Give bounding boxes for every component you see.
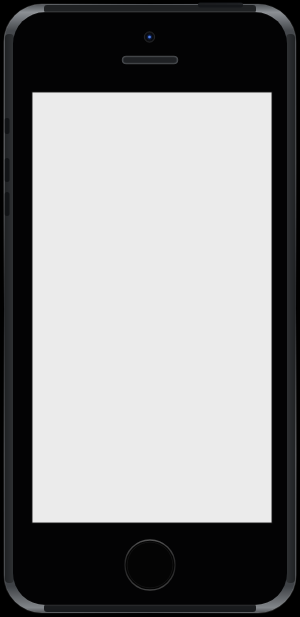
button[interactable]: Power [198, 0, 243, 10]
button[interactable]: Volume down [2, 192, 12, 216]
button[interactable]: Volume up [2, 158, 12, 182]
button[interactable]: Home [125, 540, 175, 590]
button[interactable]: Screen [32, 92, 272, 523]
button[interactable]: Mute switch [2, 118, 12, 134]
